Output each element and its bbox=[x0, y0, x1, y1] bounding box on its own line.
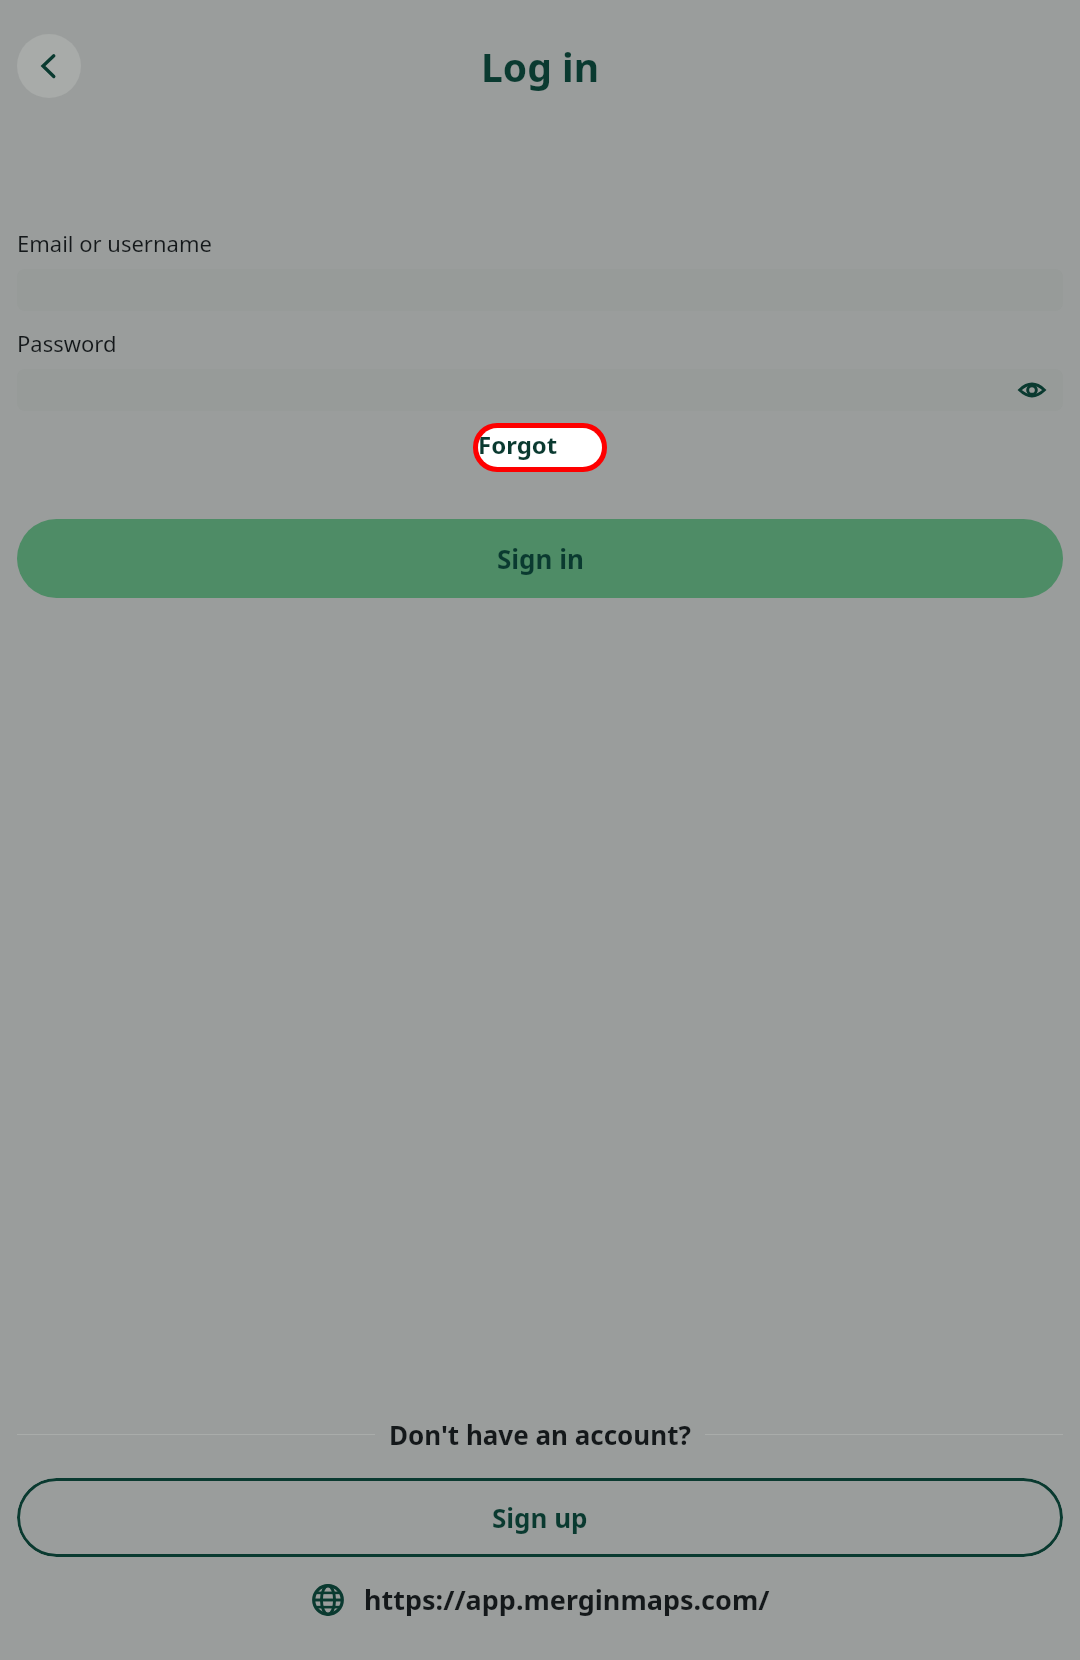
button[interactable]: Sign up bbox=[17, 1478, 1063, 1557]
button[interactable]: Show password bbox=[1015, 373, 1049, 407]
staticText: Don't have an account? bbox=[389, 1417, 691, 1452]
button[interactable]: Sign in bbox=[17, 519, 1063, 598]
button[interactable]: Show password bbox=[17, 369, 1063, 411]
staticText: Sign up bbox=[492, 1500, 588, 1535]
staticText: Sign in bbox=[497, 541, 584, 576]
staticText: Email or username bbox=[17, 228, 212, 258]
staticText: https://app.merginmaps.com/ bbox=[364, 1581, 770, 1618]
button[interactable]: Forgot password? bbox=[478, 428, 602, 467]
staticText: Forgot password? bbox=[478, 428, 602, 467]
staticText: Password bbox=[17, 328, 117, 358]
button[interactable]: https://app.merginmaps.com/ bbox=[17, 1581, 1063, 1618]
button[interactable]: Back bbox=[17, 34, 81, 98]
staticText: Log in bbox=[481, 40, 599, 93]
